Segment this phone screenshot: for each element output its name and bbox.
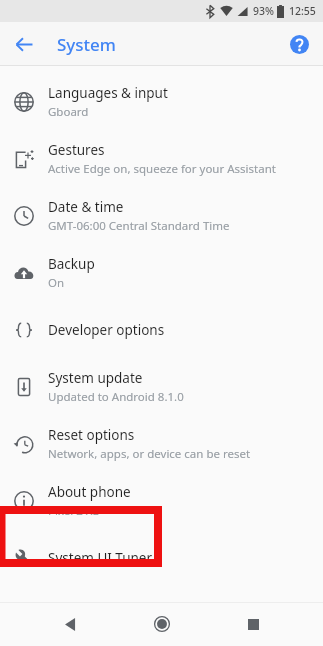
button[interactable]: Home <box>140 602 184 646</box>
staticText: About phone <box>48 483 131 501</box>
button[interactable]: About phone <box>0 472 323 529</box>
staticText: Developer options <box>48 321 165 339</box>
staticText: Reset options <box>48 426 135 444</box>
button[interactable]: Date & time <box>0 187 323 244</box>
staticText: Pixel 2 XL <box>48 503 99 519</box>
staticText: 12:55 <box>289 4 316 18</box>
staticText: Gboard <box>48 104 89 120</box>
button[interactable]: Backup <box>0 244 323 301</box>
button[interactable]: Help <box>282 27 316 61</box>
staticText: Languages & input <box>48 84 168 102</box>
staticText: On <box>48 275 65 291</box>
staticText: Backup <box>48 255 95 273</box>
button[interactable]: System UI Tuner <box>0 529 323 586</box>
staticText: Network, apps, or device can be reset <box>48 446 251 462</box>
button[interactable]: Developer options <box>0 301 323 358</box>
button[interactable]: System update <box>0 358 323 415</box>
button[interactable]: Back <box>6 26 42 62</box>
staticText: 93% <box>253 4 274 18</box>
staticText: Gestures <box>48 141 105 159</box>
staticText: Active Edge on, squeeze for your Assista… <box>48 161 276 177</box>
staticText: System update <box>48 369 143 387</box>
button[interactable]: Reset options <box>0 415 323 472</box>
staticText: System <box>57 33 116 56</box>
button[interactable]: Gestures <box>0 130 323 187</box>
staticText: Date & time <box>48 198 124 216</box>
staticText: GMT-06:00 Central Standard Time <box>48 218 230 234</box>
button[interactable]: Languages & input <box>0 73 323 130</box>
staticText: System UI Tuner <box>48 549 153 567</box>
button[interactable]: Back <box>48 602 92 646</box>
staticText: Updated to Android 8.1.0 <box>48 389 184 405</box>
button[interactable]: Recent apps <box>231 602 275 646</box>
